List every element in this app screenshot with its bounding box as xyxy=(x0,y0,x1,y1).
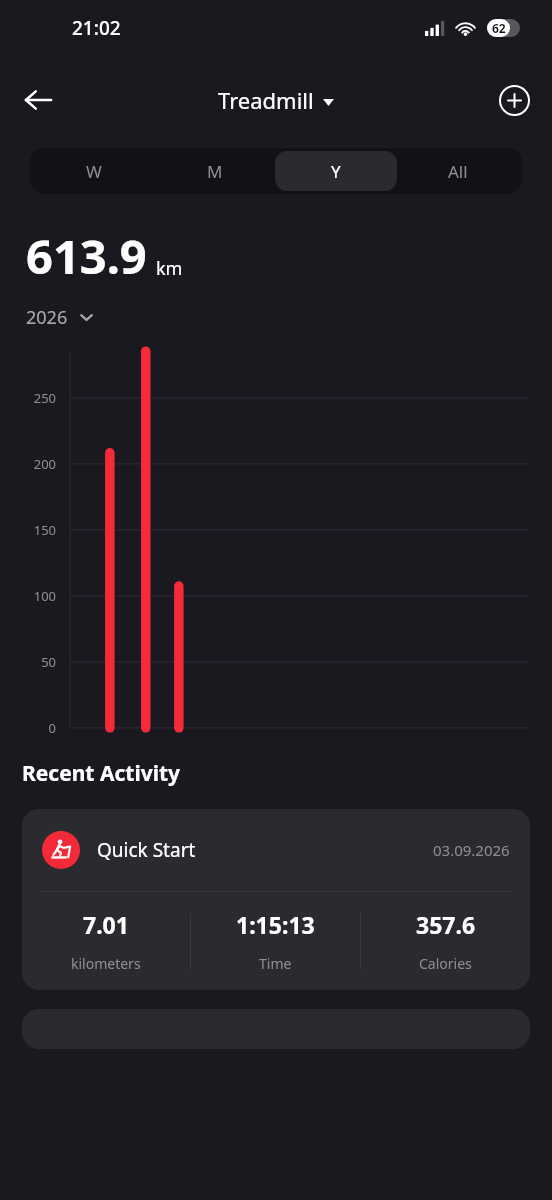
staticText: 0 xyxy=(0,719,56,737)
button[interactable]: W xyxy=(33,151,154,191)
button[interactable]: Back xyxy=(14,76,62,124)
button[interactable]: Treadmill xyxy=(212,81,340,119)
staticText: All xyxy=(448,160,468,183)
button[interactable]: Add activity xyxy=(492,78,536,122)
staticText: 50 xyxy=(0,653,56,671)
staticText: kilometers xyxy=(71,954,141,973)
staticText: 2026 xyxy=(26,305,68,330)
staticText: M xyxy=(207,160,223,183)
staticText: Time xyxy=(259,954,292,973)
staticText: Y xyxy=(331,160,341,183)
button[interactable]: Quick Start xyxy=(22,809,530,990)
button[interactable]: 2026 xyxy=(22,300,98,335)
staticText: Treadmill xyxy=(218,85,314,115)
staticText: Recent Activity xyxy=(22,759,181,788)
staticText: 613.9 xyxy=(26,224,147,288)
button[interactable]: All xyxy=(397,151,519,191)
staticText: Quick Start xyxy=(97,837,196,863)
staticText: 357.6 xyxy=(416,909,476,940)
staticText: W xyxy=(86,160,102,183)
staticText: 7.01 xyxy=(83,909,129,940)
button[interactable]: Y xyxy=(275,151,397,191)
staticText: 250 xyxy=(0,389,56,407)
staticText: 03.09.2026 xyxy=(433,840,510,860)
staticText: 1:15:13 xyxy=(236,909,315,940)
button[interactable]: M xyxy=(154,151,275,191)
staticText: 200 xyxy=(0,455,56,473)
staticText: 62 xyxy=(492,20,506,36)
staticText: Calories xyxy=(419,954,472,973)
staticText: 100 xyxy=(0,587,56,605)
staticText: 150 xyxy=(0,521,56,539)
staticText: 21:02 xyxy=(72,15,121,41)
staticText: km xyxy=(156,256,183,281)
